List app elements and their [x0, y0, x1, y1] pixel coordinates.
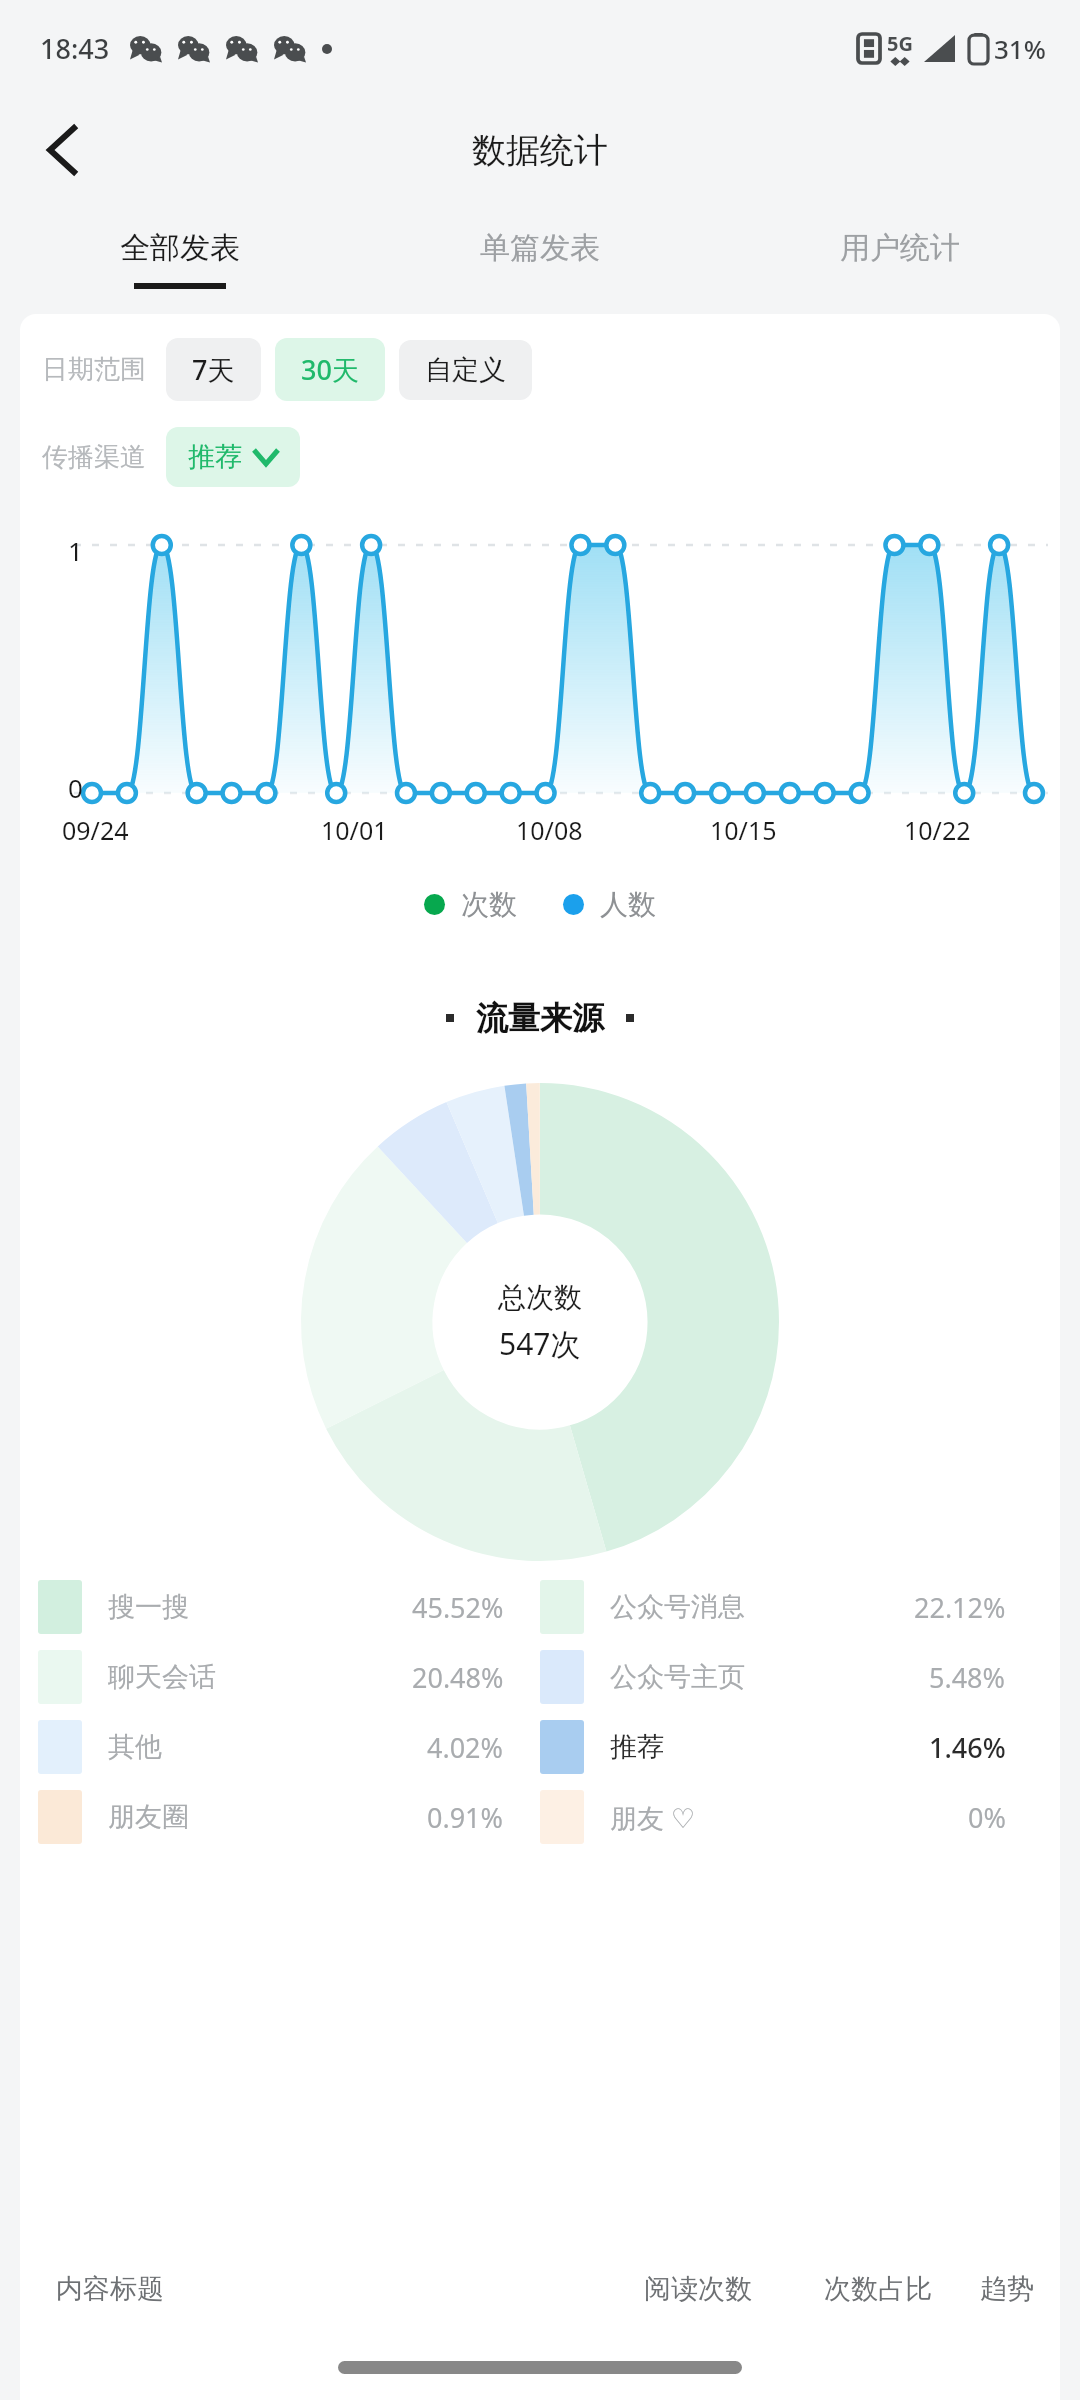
staticText: 09/24 [62, 813, 129, 847]
button[interactable]: 自定义 [399, 340, 532, 400]
staticText: 单篇发表 [480, 229, 600, 267]
staticText: 朋友 ♡ [610, 1799, 696, 1836]
button[interactable]: 公众号消息 [540, 1580, 1042, 1634]
button[interactable]: 7天 [166, 338, 261, 401]
staticText: 日期范围 [42, 353, 146, 386]
staticText: 传播渠道 [42, 441, 146, 474]
staticText: 自定义 [425, 353, 506, 387]
staticText: 0.91% [427, 1799, 504, 1836]
staticText: 趋势 [980, 2272, 1034, 2306]
button[interactable]: 30天 [275, 338, 385, 401]
button[interactable]: 搜一搜 [38, 1580, 540, 1634]
button[interactable]: 朋友 ♡ [540, 1790, 1042, 1844]
button[interactable]: 朋友圈 [38, 1790, 540, 1844]
staticText: 22.12% [914, 1589, 1006, 1626]
staticText: 5.48% [929, 1659, 1006, 1696]
staticText: 全部发表 [120, 229, 240, 267]
staticText: 4.02% [427, 1729, 504, 1766]
staticText: 0% [968, 1799, 1006, 1836]
staticText: 推荐 [610, 1730, 664, 1764]
staticText: 内容标题 [56, 2272, 164, 2306]
button[interactable]: 公众号主页 [540, 1650, 1042, 1704]
staticText: 公众号主页 [610, 1660, 745, 1694]
button[interactable]: 聊天会话 [38, 1650, 540, 1704]
staticText: 1 [68, 533, 83, 568]
staticText: 30天 [301, 351, 359, 388]
staticText: 公众号消息 [610, 1590, 745, 1624]
staticText: 10/08 [516, 813, 583, 847]
staticText: 1.46% [929, 1729, 1006, 1766]
staticText: 5G [887, 30, 913, 57]
staticText: 0 [68, 770, 83, 805]
staticText: 阅读次数 [644, 2272, 752, 2306]
staticText: 聊天会话 [108, 1660, 216, 1694]
staticText: 数据统计 [472, 129, 608, 172]
staticText: 547次 [499, 1323, 581, 1364]
staticText: 搜一搜 [108, 1590, 189, 1624]
staticText: 其他 [108, 1730, 162, 1764]
button[interactable]: Back [24, 112, 100, 188]
staticText: 10/01 [321, 813, 388, 847]
staticText: 用户统计 [840, 229, 960, 267]
staticText: 10/22 [904, 813, 971, 847]
staticText: 总次数 [498, 1280, 582, 1315]
button[interactable]: 全部发表 [0, 204, 360, 314]
staticText: 人数 [600, 887, 656, 922]
staticText: 10/15 [710, 813, 777, 847]
button[interactable]: 单篇发表 [360, 204, 720, 314]
staticText: 次数 [461, 887, 517, 922]
button[interactable]: 用户统计 [720, 204, 1080, 314]
button[interactable]: 其他 [38, 1720, 540, 1774]
staticText: 7天 [192, 351, 235, 388]
button[interactable]: 推荐 [166, 427, 300, 487]
button[interactable]: 推荐 [540, 1720, 1042, 1774]
staticText: 20.48% [412, 1659, 504, 1696]
staticText: 流量来源 [476, 998, 604, 1038]
staticText: 次数占比 [824, 2272, 932, 2306]
staticText: 18:43 [40, 30, 110, 67]
staticText: 45.52% [412, 1589, 504, 1626]
staticText: 朋友圈 [108, 1800, 189, 1834]
staticText: 31% [994, 31, 1046, 66]
staticText: 推荐 [188, 440, 242, 474]
